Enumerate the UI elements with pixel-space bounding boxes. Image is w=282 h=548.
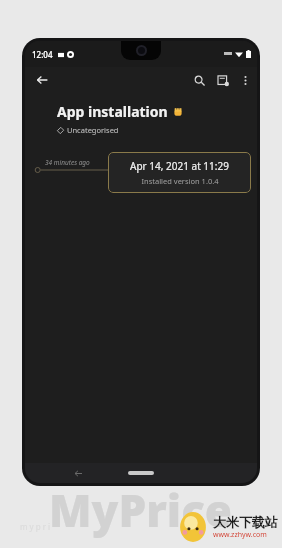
staticText: www.zzhyw.com	[213, 530, 267, 540]
staticText: 12:04	[32, 49, 53, 60]
button[interactable]: Back	[71, 466, 85, 480]
button[interactable]: Home	[128, 471, 154, 475]
button[interactable]: Back	[31, 69, 53, 91]
button[interactable]: Uncategorised	[57, 125, 257, 135]
staticText: Apr 14, 2021 at 11:29	[130, 159, 229, 173]
staticText: Uncategorised	[67, 125, 119, 135]
staticText: 34 minutes ago	[45, 158, 90, 167]
button[interactable]: Search	[188, 69, 210, 91]
staticText: MyPrice	[49, 480, 233, 540]
staticText: 大米下载站	[213, 514, 278, 530]
staticText: m y p r i	[20, 521, 51, 532]
button[interactable]: More options	[235, 69, 255, 91]
staticText: App installation	[57, 102, 168, 121]
staticText: Installed version 1.0.4	[141, 176, 219, 186]
button[interactable]: Apr 14, 2021 at 11:29	[108, 152, 251, 193]
button[interactable]: Filter	[212, 69, 234, 91]
